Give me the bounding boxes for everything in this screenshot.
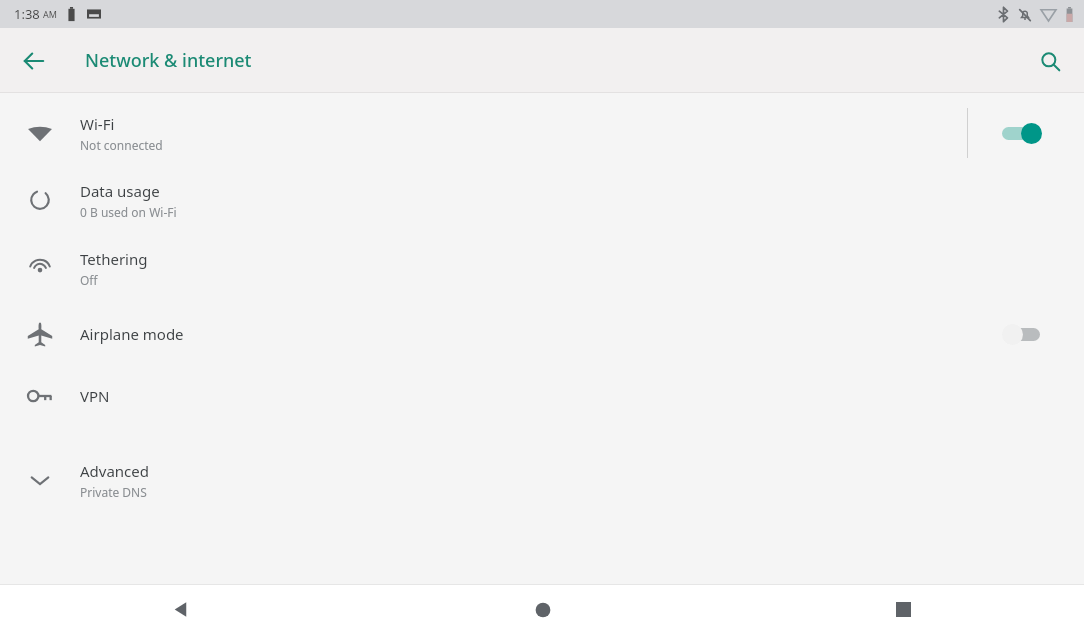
staticText: Tethering <box>80 249 148 269</box>
staticText: Not connected <box>80 137 163 153</box>
button[interactable]: Tethering <box>0 242 1084 294</box>
staticText: Wi-Fi <box>80 114 115 134</box>
button[interactable]: Back <box>0 584 362 635</box>
button[interactable]: Back <box>12 39 56 83</box>
staticText: VPN <box>80 386 110 406</box>
staticText: 0 B used on Wi-Fi <box>80 204 177 220</box>
button[interactable]: Search <box>1028 39 1072 83</box>
staticText: Advanced <box>80 461 150 481</box>
button[interactable]: Home <box>362 584 723 635</box>
staticText: Data usage <box>80 181 160 201</box>
button[interactable]: Advanced <box>0 454 1084 506</box>
button[interactable]: Data usage <box>0 174 1084 226</box>
staticText: Network & internet <box>85 48 252 73</box>
staticText: Off <box>80 272 98 288</box>
staticText: Private DNS <box>80 484 147 500</box>
button[interactable]: Recent apps <box>723 584 1084 635</box>
staticText: AM <box>43 8 57 20</box>
staticText: Airplane mode <box>80 324 184 344</box>
button[interactable] <box>1000 120 1054 146</box>
button[interactable]: Airplane mode <box>0 308 1084 360</box>
button[interactable]: Wi-Fi <box>0 107 1084 159</box>
button[interactable]: VPN <box>0 370 1084 422</box>
button[interactable] <box>1000 321 1054 347</box>
staticText: 1:38 <box>14 5 40 23</box>
